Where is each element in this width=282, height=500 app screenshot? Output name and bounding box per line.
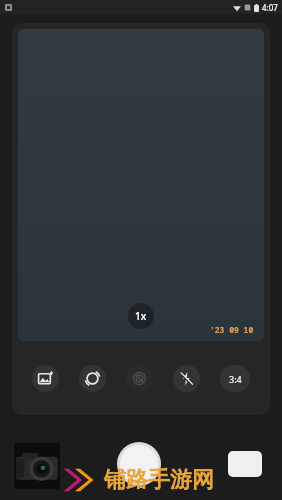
button[interactable]: Switch mode — [228, 451, 262, 477]
staticText: '23 09 10 — [210, 324, 254, 335]
button[interactable]: 3:4 — [220, 365, 250, 392]
button[interactable]: Switch camera — [79, 365, 106, 392]
button[interactable]: Settings — [126, 365, 153, 392]
staticText: 3:4 — [229, 373, 242, 385]
staticText: 1x — [135, 309, 147, 323]
button[interactable]: 1x — [128, 303, 154, 329]
button[interactable]: Gallery filter — [32, 365, 59, 392]
staticText: 铺路手游网 — [104, 466, 214, 494]
staticText: 4:07 — [262, 2, 278, 13]
button[interactable]: Shutter — [117, 442, 161, 486]
button[interactable]: Gallery — [14, 443, 60, 489]
button[interactable]: Flash off — [173, 365, 200, 392]
